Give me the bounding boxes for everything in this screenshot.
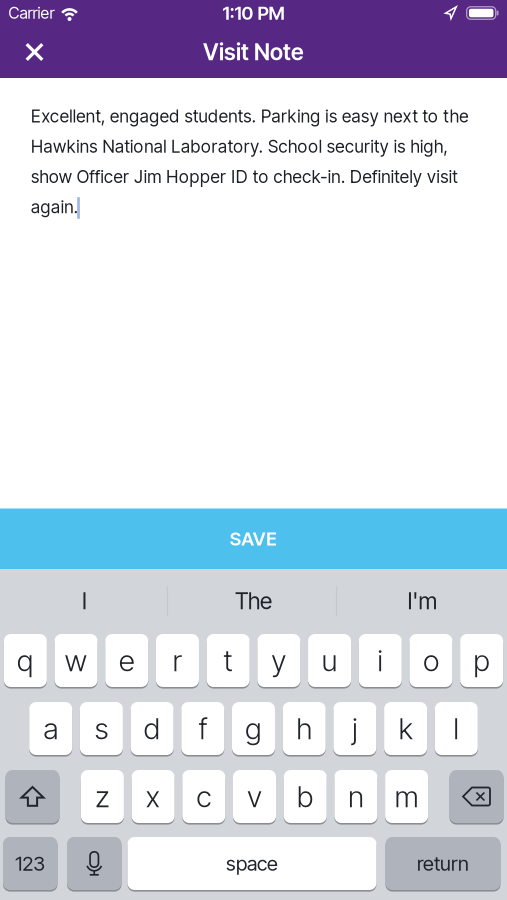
staticText: c <box>196 779 211 814</box>
staticText: I'm <box>407 588 437 614</box>
staticText: e <box>119 643 135 678</box>
staticText: h <box>296 711 312 746</box>
staticText: p <box>473 643 490 678</box>
staticText: t <box>223 643 233 678</box>
staticText: z <box>95 779 110 814</box>
staticText: l <box>453 711 459 746</box>
staticText: space <box>226 852 278 875</box>
staticText: The <box>235 588 272 614</box>
staticText: o <box>423 643 439 678</box>
staticText: q <box>17 643 34 678</box>
staticText: a <box>43 711 58 746</box>
staticText: Visit Note <box>203 39 304 65</box>
staticText: Hawkins National Laboratory. School secu… <box>31 136 448 157</box>
staticText: Carrier <box>8 4 54 22</box>
staticText: s <box>94 711 108 746</box>
staticText: m <box>395 779 419 814</box>
staticText: f <box>198 711 207 746</box>
staticText: d <box>144 711 161 746</box>
staticText: again. <box>31 197 78 217</box>
staticText: show Officer Jim Hopper ID to check-in. … <box>31 166 457 187</box>
staticText: SAVE <box>230 528 277 550</box>
staticText: w <box>64 643 87 678</box>
staticText: return <box>417 852 469 875</box>
staticText: 1:10 PM <box>222 2 284 24</box>
staticText: I <box>82 588 87 614</box>
staticText: y <box>271 643 286 678</box>
staticText: Excellent, engaged students. Parking is … <box>31 106 468 126</box>
staticText: r <box>172 643 182 678</box>
staticText: 123 <box>15 852 45 875</box>
staticText: i <box>377 643 383 678</box>
staticText: b <box>297 779 314 814</box>
staticText: x <box>146 779 161 814</box>
staticText: v <box>247 779 262 814</box>
staticText: n <box>348 779 364 814</box>
staticText: g <box>245 711 262 746</box>
staticText: u <box>321 643 337 678</box>
staticText: j <box>352 711 358 746</box>
staticText: k <box>399 711 413 746</box>
